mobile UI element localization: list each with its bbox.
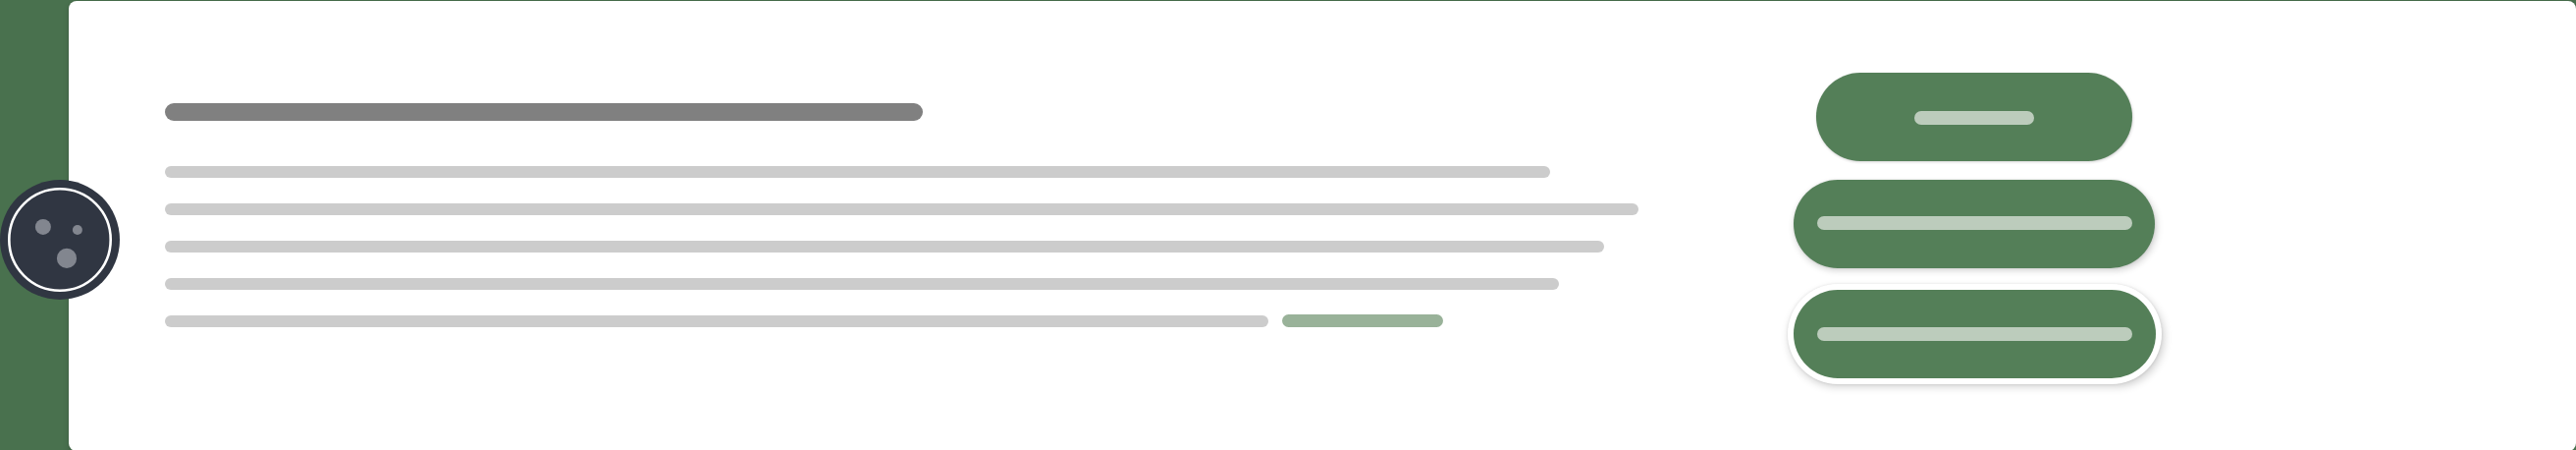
button[interactable]: Primary action (1816, 73, 2132, 161)
button[interactable]: Profile (0, 180, 120, 300)
button[interactable]: Tertiary action (1794, 290, 2156, 378)
button[interactable]: Secondary action (1794, 180, 2155, 268)
